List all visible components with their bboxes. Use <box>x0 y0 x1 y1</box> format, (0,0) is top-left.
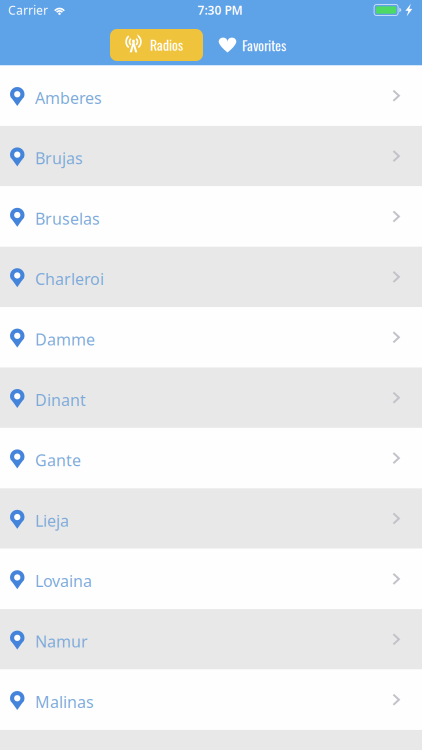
button[interactable]: Dinant <box>0 367 422 428</box>
staticText: Favorites <box>242 35 286 55</box>
staticText: Amberes <box>35 87 102 108</box>
button[interactable]: Brujas <box>0 126 422 186</box>
staticText: Lovaina <box>35 570 92 591</box>
button[interactable]: Gante <box>0 428 422 488</box>
staticText: Gante <box>35 449 81 471</box>
staticText: Charleroi <box>35 268 104 289</box>
staticText: Brujas <box>35 147 83 169</box>
button[interactable]: Lieja <box>0 488 422 549</box>
button[interactable]: Charleroi <box>0 247 422 307</box>
staticText: Damme <box>35 329 95 350</box>
button[interactable]: Malinas <box>0 669 422 730</box>
staticText: 7:30 PM <box>198 2 243 18</box>
button[interactable]: Favorites <box>203 29 288 61</box>
staticText: Lieja <box>35 510 69 531</box>
button[interactable]: Amberes <box>0 65 422 126</box>
staticText: Carrier <box>8 2 48 18</box>
button[interactable]: Lovaina <box>0 549 422 609</box>
staticText: Radios <box>150 34 183 55</box>
button[interactable]: Damme <box>0 307 422 367</box>
staticText: Namur <box>35 631 88 652</box>
button[interactable]: Radios <box>110 29 203 61</box>
button[interactable]: Bruselas <box>0 186 422 247</box>
staticText: Malinas <box>35 691 94 712</box>
staticText: Bruselas <box>35 208 100 229</box>
button[interactable]: Namur <box>0 609 422 669</box>
staticText: Dinant <box>35 389 86 410</box>
